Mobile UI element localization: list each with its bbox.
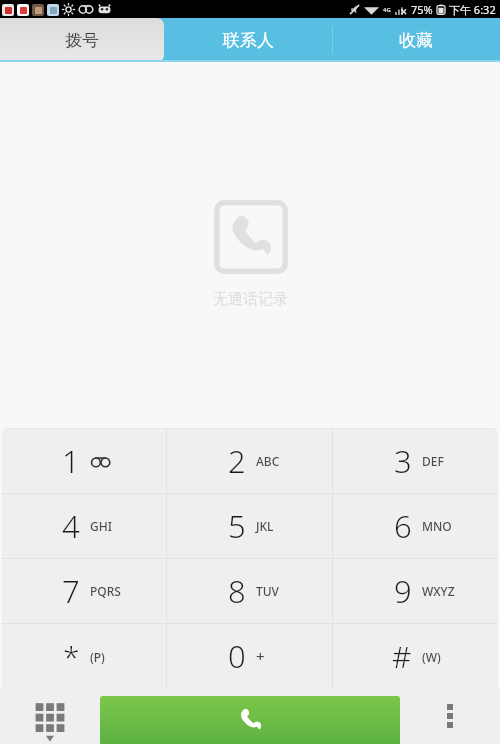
staticText: MNO (422, 518, 452, 534)
button[interactable]: 6 (333, 494, 498, 558)
staticText: # (392, 636, 412, 677)
button[interactable]: 1 (2, 428, 166, 493)
staticText: 下午 6:32 (449, 2, 496, 17)
staticText: 1 (62, 440, 80, 482)
staticText: 9 (394, 570, 412, 612)
button[interactable]: 拨号 (0, 18, 164, 62)
button[interactable]: 收藏 (332, 18, 500, 62)
staticText: (P) (90, 649, 105, 665)
staticText: PQRS (90, 583, 121, 599)
button[interactable]: * (2, 624, 166, 688)
staticText: 无通话记录 (213, 290, 288, 309)
button[interactable]: 9 (333, 559, 498, 623)
button[interactable]: 2 (167, 428, 332, 493)
staticText: ABC (256, 453, 280, 469)
staticText: 4G (383, 6, 391, 14)
staticText: WXYZ (422, 583, 455, 599)
button[interactable]: 5 (167, 494, 332, 558)
button[interactable]: # (333, 624, 498, 688)
staticText: (W) (422, 649, 441, 665)
staticText: 收藏 (399, 30, 433, 51)
button[interactable]: Hide keypad (0, 688, 100, 744)
staticText: DEF (422, 453, 444, 469)
staticText: 6 (394, 505, 412, 547)
staticText: GHI (90, 518, 112, 534)
staticText: 拨号 (65, 30, 99, 51)
button[interactable]: 7 (2, 559, 166, 623)
button[interactable]: 8 (167, 559, 332, 623)
button[interactable]: 0 (167, 624, 332, 688)
staticText: 3 (394, 440, 412, 482)
staticText: * (63, 636, 80, 677)
staticText: 2 (228, 440, 246, 482)
staticText: 8 (228, 570, 246, 612)
button[interactable]: 联系人 (164, 18, 332, 62)
staticText: 5 (228, 505, 246, 547)
staticText: JKL (256, 518, 274, 534)
button[interactable]: 4 (2, 494, 166, 558)
button[interactable]: Call (100, 696, 400, 744)
staticText: 75% (411, 2, 433, 17)
button[interactable]: 3 (333, 428, 498, 493)
staticText: 7 (62, 570, 80, 612)
staticText: + (256, 646, 265, 666)
staticText: 4 (62, 505, 80, 547)
button[interactable]: More options (400, 688, 500, 744)
staticText: 联系人 (223, 30, 274, 51)
staticText: TUV (256, 583, 279, 599)
staticText: 0 (228, 635, 246, 677)
